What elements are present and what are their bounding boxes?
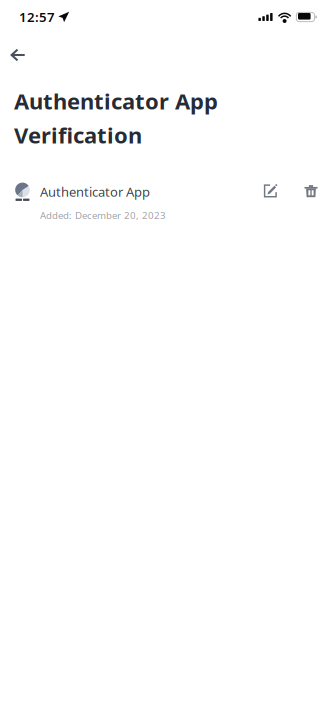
button[interactable]: Delete	[296, 176, 326, 206]
staticText: Authenticator App	[14, 86, 218, 116]
staticText: 12:57	[19, 8, 55, 26]
button[interactable]: Edit	[255, 176, 285, 206]
button[interactable]: Back	[0, 42, 52, 68]
staticText: Added: December 20, 2023	[40, 209, 166, 222]
staticText: Authenticator App	[40, 183, 150, 201]
staticText: Verification	[14, 120, 142, 150]
